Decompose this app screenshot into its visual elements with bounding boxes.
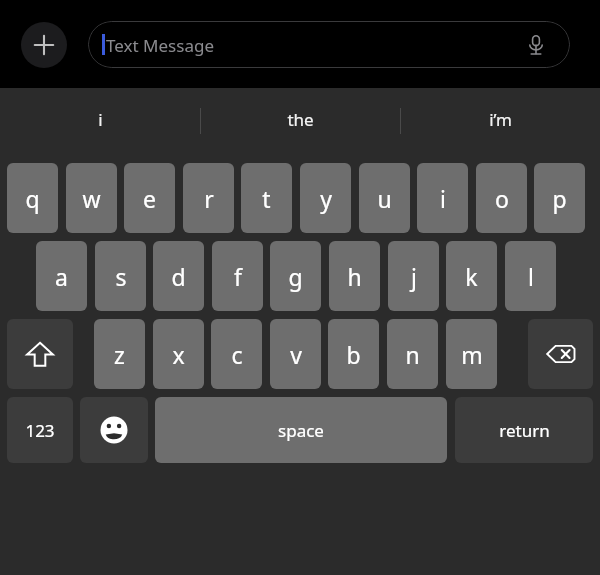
staticText: Text Message [106,34,214,57]
button[interactable]: Dictate message [523,32,549,58]
button[interactable]: m [446,319,497,389]
button[interactable]: space [155,397,447,463]
staticText: l [528,261,534,292]
staticText: u [377,183,392,214]
staticText: q [25,183,40,214]
staticText: space [278,419,324,442]
staticText: r [204,183,214,214]
staticText: 123 [25,419,55,442]
button[interactable]: s [95,241,146,311]
button[interactable]: x [153,319,204,389]
staticText: c [231,339,243,370]
button[interactable]: l [505,241,556,311]
staticText: n [405,339,420,370]
button[interactable]: v [270,319,321,389]
button[interactable]: p [534,163,585,233]
button[interactable]: c [211,319,262,389]
button[interactable]: h [329,241,380,311]
button[interactable]: i [417,163,468,233]
staticText: return [499,419,550,442]
button[interactable]: o [476,163,527,233]
staticText: g [288,261,303,292]
staticText: p [552,183,567,214]
button[interactable]: i’m [400,88,600,151]
button[interactable]: return [455,397,593,463]
staticText: e [143,183,156,214]
staticText: t [262,183,271,214]
button[interactable]: Add attachment [21,22,67,68]
staticText: i [440,183,446,214]
staticText: w [82,183,101,214]
staticText: x [172,339,185,370]
button[interactable]: u [359,163,410,233]
button[interactable]: b [328,319,379,389]
button[interactable]: e [124,163,175,233]
button[interactable]: i [0,88,200,151]
button[interactable]: a [36,241,87,311]
button[interactable]: Text Message [88,21,570,68]
staticText: z [114,339,125,370]
staticText: i’m [489,108,512,131]
staticText: s [115,261,127,292]
button[interactable]: Emoji [80,397,148,463]
button[interactable]: y [300,163,351,233]
staticText: d [171,261,186,292]
staticText: k [465,261,478,292]
button[interactable]: f [212,241,263,311]
button[interactable]: w [66,163,117,233]
staticText: o [495,183,509,214]
staticText: b [346,339,361,370]
staticText: m [461,339,483,370]
button[interactable]: the [200,88,400,151]
button[interactable]: z [94,319,145,389]
button[interactable]: r [183,163,234,233]
button[interactable]: t [241,163,292,233]
button[interactable]: Backspace [528,319,593,389]
button[interactable]: Shift [7,319,73,389]
button[interactable]: q [7,163,58,233]
button[interactable]: 123 [7,397,73,463]
button[interactable]: j [388,241,439,311]
button[interactable]: g [270,241,321,311]
staticText: i [98,108,103,131]
staticText: f [234,261,242,292]
button[interactable]: d [153,241,204,311]
staticText: h [347,261,362,292]
staticText: the [287,108,314,131]
staticText: v [290,339,302,370]
staticText: a [55,261,68,292]
staticText: y [320,183,332,214]
button[interactable]: n [387,319,438,389]
staticText: j [411,261,417,292]
button[interactable]: k [446,241,497,311]
